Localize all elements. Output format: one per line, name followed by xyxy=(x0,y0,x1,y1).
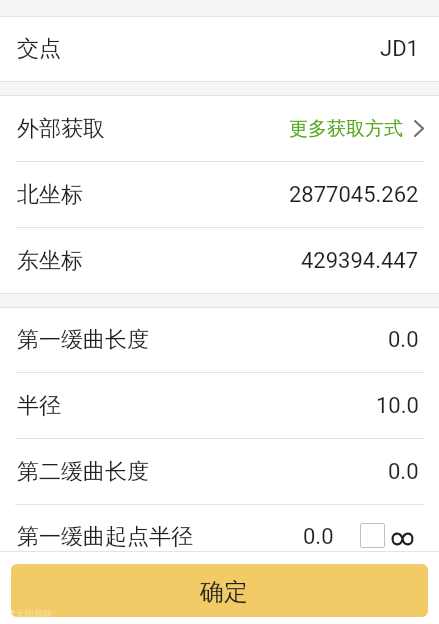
button[interactable]: 第一缓曲长度 xyxy=(0,308,439,372)
staticText: JD1 xyxy=(380,36,419,62)
staticText: 太阳驾驶 xyxy=(16,608,52,619)
staticText: 10.0 xyxy=(376,393,419,419)
staticText: 第二缓曲长度 xyxy=(17,458,149,486)
staticText: 2877045.262 xyxy=(289,182,419,208)
staticText: 确定 xyxy=(200,577,248,607)
button[interactable]: 第一缓曲起点半径 xyxy=(0,505,439,569)
staticText: 外部获取 xyxy=(17,115,105,143)
staticText: 半径 xyxy=(17,392,61,420)
staticText: 0.0 xyxy=(303,524,334,550)
staticText: 更多获取方式 xyxy=(289,117,403,141)
staticText: 第一缓曲起点半径 xyxy=(17,523,193,551)
button[interactable]: 半径 xyxy=(0,373,439,438)
staticText: 东坐标 xyxy=(17,247,83,275)
staticText: 北坐标 xyxy=(17,181,83,209)
button[interactable]: 确定 xyxy=(11,564,428,617)
button[interactable]: 第二缓曲长度 xyxy=(0,439,439,504)
button[interactable]: 北坐标 xyxy=(0,162,439,227)
button[interactable]: 东坐标 xyxy=(0,228,439,293)
staticText: 0.0 xyxy=(388,459,419,485)
staticText: 第一缓曲长度 xyxy=(17,326,149,354)
button[interactable]: 交点 xyxy=(0,16,439,81)
button[interactable]: 外部获取 xyxy=(0,96,439,161)
staticText: 0.0 xyxy=(388,327,419,353)
staticText: 429394.447 xyxy=(301,248,419,274)
staticText: 交点 xyxy=(17,35,61,63)
button[interactable]: Infinite radius checkbox xyxy=(360,523,385,548)
